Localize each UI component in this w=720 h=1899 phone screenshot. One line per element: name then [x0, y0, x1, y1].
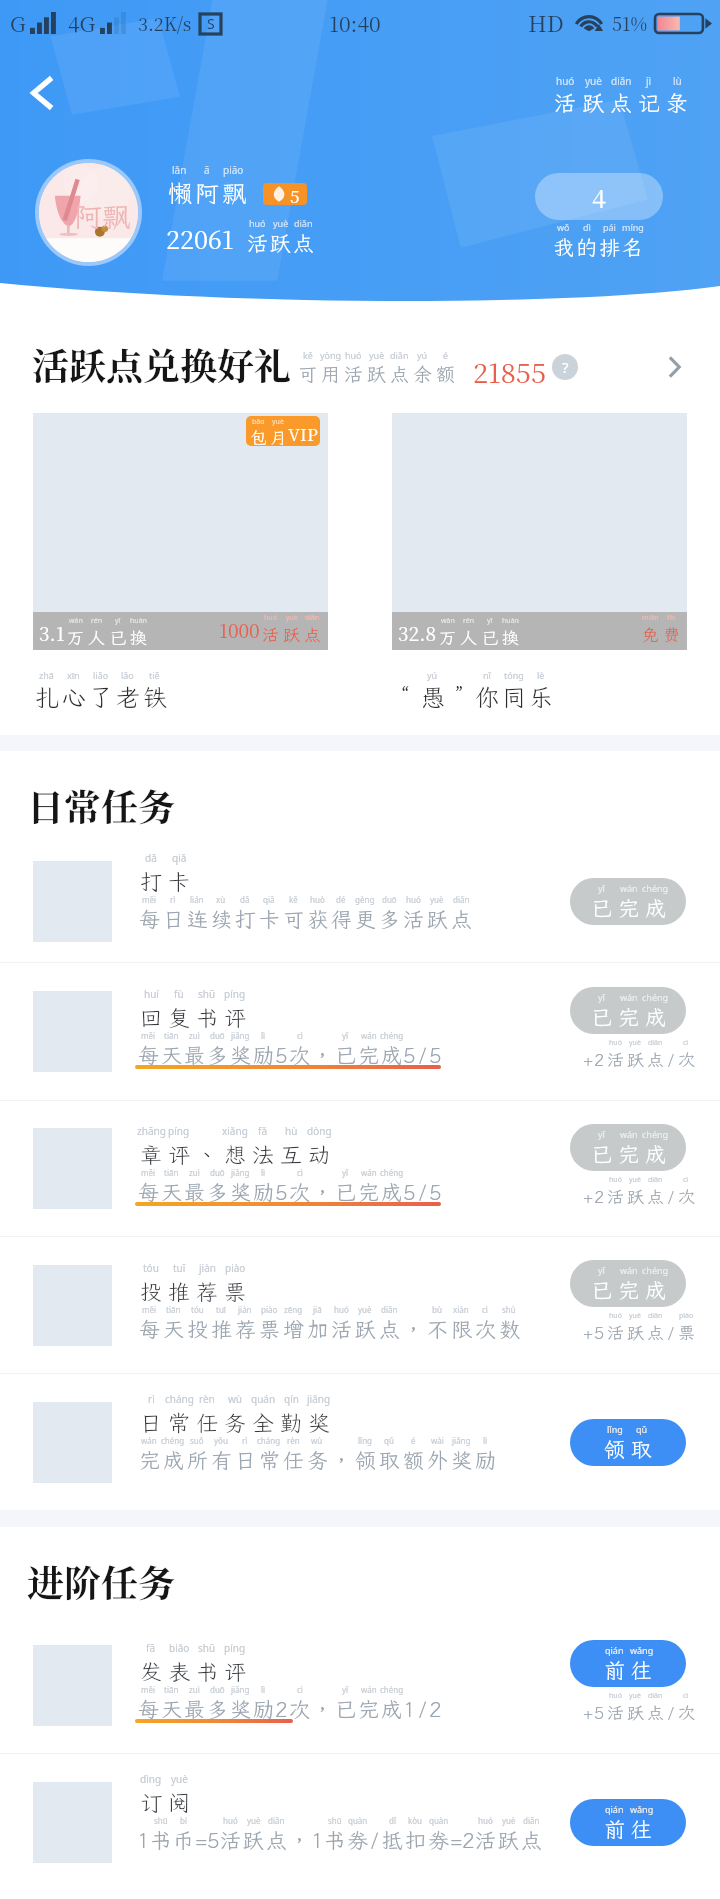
staticText: lián	[190, 894, 204, 905]
staticText: bāo	[252, 417, 265, 427]
button[interactable]: Back	[12, 62, 74, 124]
staticText: shū	[154, 1815, 168, 1826]
staticText: cì	[683, 1175, 689, 1185]
staticText: 书	[324, 1826, 345, 1854]
staticText: lì	[261, 1030, 266, 1041]
staticText: ，	[331, 1446, 352, 1474]
staticText: /	[668, 1048, 674, 1070]
staticText: 点	[647, 1185, 664, 1207]
staticText: G	[10, 8, 26, 38]
staticText: 活	[475, 1826, 496, 1854]
staticText: ，	[312, 1041, 333, 1069]
staticText: 1	[137, 1826, 150, 1854]
staticText: jiàn	[238, 1304, 252, 1315]
button[interactable]: yǐ	[570, 987, 686, 1034]
staticText: fǎ	[258, 1124, 268, 1138]
staticText: 励	[475, 1446, 496, 1474]
staticText: 订	[140, 1788, 163, 1817]
button[interactable]: yǐ	[570, 1124, 686, 1171]
staticText: 跃	[367, 361, 387, 386]
staticText: yǐ	[342, 1167, 349, 1178]
button[interactable]: dìng	[0, 1754, 720, 1891]
button[interactable]: qián	[570, 1640, 686, 1687]
button[interactable]: qián	[570, 1799, 686, 1846]
staticText: yuè	[629, 1691, 641, 1701]
staticText: tiě	[149, 669, 160, 681]
button[interactable]: lǐng	[570, 1419, 686, 1466]
staticText: 任	[196, 1408, 219, 1437]
staticText: 排	[599, 233, 620, 261]
button[interactable]: dǎ	[0, 841, 720, 963]
staticText: wàn	[69, 616, 83, 626]
button[interactable]: zhāng	[0, 1101, 720, 1237]
staticText: 万	[67, 626, 84, 648]
staticText: 5	[594, 1701, 605, 1723]
staticText: chéng	[642, 882, 669, 894]
button[interactable]: More gifts	[649, 342, 699, 392]
button[interactable]: Profile avatar	[39, 163, 138, 262]
button[interactable]: tóu	[0, 1237, 720, 1374]
staticText: měi	[141, 1167, 156, 1178]
staticText: zhāng	[137, 1124, 166, 1138]
staticText: měi	[142, 894, 157, 905]
staticText: yuè	[369, 349, 385, 361]
staticText: píng	[224, 987, 246, 1001]
button[interactable]: My rank	[535, 173, 663, 220]
staticText: 点	[647, 1321, 664, 1343]
staticText: 额	[403, 1446, 424, 1474]
staticText: lè	[537, 669, 545, 681]
staticText: yuè	[286, 613, 298, 623]
staticText: yǒu	[214, 1435, 228, 1446]
staticText: huí	[144, 987, 159, 1001]
staticText: zuì	[189, 1684, 200, 1695]
staticText: 奖	[230, 1041, 251, 1069]
button[interactable]: bāo	[33, 413, 328, 713]
staticText: 前	[604, 1656, 625, 1684]
button[interactable]: Help	[552, 354, 578, 380]
staticText: 已	[335, 1695, 356, 1723]
staticText: qián	[605, 1803, 624, 1815]
staticText: 每	[138, 1178, 159, 1206]
staticText: ，	[289, 1826, 310, 1854]
button[interactable]: fā	[0, 1617, 720, 1754]
staticText: zēng	[284, 1304, 303, 1315]
staticText: 发	[140, 1657, 163, 1686]
button[interactable]: huó	[551, 74, 691, 117]
button[interactable]: 32.8	[392, 413, 687, 713]
staticText: =	[195, 1826, 208, 1854]
staticText: cháng	[165, 1392, 194, 1406]
staticText: 想	[224, 1140, 247, 1169]
staticText: 活	[262, 623, 279, 645]
staticText: 励	[253, 1695, 274, 1723]
staticText: 已	[591, 1003, 612, 1031]
staticText: 阅	[168, 1788, 191, 1817]
staticText: 打	[235, 905, 256, 933]
staticText: lǐng	[607, 1423, 623, 1435]
button[interactable]: yǐ	[570, 1260, 686, 1307]
button[interactable]: huí	[0, 963, 720, 1101]
staticText: 次	[475, 1315, 496, 1343]
staticText: 活	[607, 1701, 624, 1723]
button[interactable]: rì	[0, 1374, 720, 1511]
staticText: diǎn	[305, 613, 320, 623]
staticText: +	[583, 1701, 594, 1723]
staticText: fù	[174, 987, 184, 1001]
staticText: diǎn	[268, 1815, 285, 1826]
staticText: 最	[184, 1178, 205, 1206]
staticText: rì	[148, 1392, 155, 1406]
staticText: 活	[220, 1826, 241, 1854]
staticText: 2	[275, 1695, 288, 1723]
staticText: 推	[211, 1315, 232, 1343]
staticText: 阿飘	[74, 198, 131, 235]
staticText: 完	[618, 1276, 639, 1304]
staticText: 往	[631, 1815, 652, 1843]
staticText: xiǎng	[222, 1124, 248, 1138]
staticText: 勤	[280, 1408, 303, 1437]
staticText: 日常任务	[27, 778, 175, 831]
staticText: huó	[609, 1038, 622, 1048]
staticText: 活	[607, 1185, 624, 1207]
staticText: 4G	[68, 8, 96, 38]
staticText: 动	[308, 1140, 331, 1169]
staticText: jiǎng	[452, 1435, 471, 1446]
button[interactable]: yǐ	[570, 878, 686, 925]
